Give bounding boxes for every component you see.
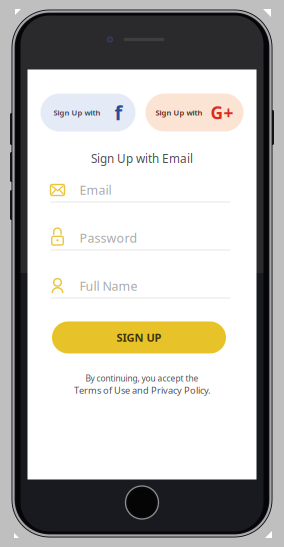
button[interactable]: SIGN UP	[55, 323, 229, 355]
staticText: SIGN UP	[116, 330, 161, 345]
staticText: Password	[79, 229, 137, 246]
staticText: Terms of Use and Privacy Policy.	[74, 384, 210, 396]
staticText: Sign Up with	[53, 107, 100, 118]
staticText: Full Name	[79, 277, 137, 294]
button[interactable]: Sign Up with	[40, 93, 135, 131]
staticText: G+	[210, 101, 233, 124]
button[interactable]: Sign Up with	[145, 93, 243, 131]
staticText: Email	[79, 181, 111, 198]
staticText: Sign Up with Email	[91, 150, 193, 166]
staticText: Sign Up with	[155, 107, 202, 118]
staticText: f	[114, 99, 122, 126]
staticText: By continuing, you accept the	[85, 372, 198, 384]
